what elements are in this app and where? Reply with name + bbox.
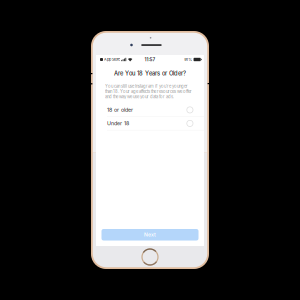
staticText: 91%	[184, 57, 192, 62]
staticText: and the way we use your data for ads.	[105, 94, 174, 99]
staticText: 18 or older	[107, 107, 133, 113]
staticText: Under 18	[107, 120, 129, 127]
staticText: You can still use Instagram if you're yo…	[105, 84, 188, 89]
staticText: Next	[144, 232, 156, 238]
button[interactable]: Next	[101, 229, 198, 240]
staticText: App Store	[104, 57, 120, 62]
staticText: Are You 18 Years or Older?	[114, 70, 186, 77]
button[interactable]: 18 or older	[96, 103, 204, 116]
button[interactable]: Under 18	[96, 117, 204, 130]
staticText: than 18. Your age affects the resources …	[105, 89, 192, 94]
staticText: 11:57	[144, 57, 155, 62]
button[interactable]: Home	[91, 246, 209, 269]
